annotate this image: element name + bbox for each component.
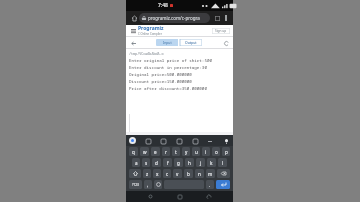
button[interactable]: Voice input [222,137,230,145]
staticText: k [210,160,213,166]
staticText: w [143,149,147,155]
staticText: Programiz [138,25,164,32]
staticText: a [135,160,138,166]
button[interactable]: Clipboard [175,137,183,145]
staticText: e [154,149,157,155]
staticText: . [209,182,211,188]
staticText: g [177,160,180,166]
button[interactable]: Sign up [212,28,230,34]
staticText: o [215,149,218,155]
staticText: Original price=500.000000 [129,72,192,78]
staticText: n [198,171,201,177]
button[interactable]: i [202,147,210,156]
button[interactable]: z [143,169,151,178]
button[interactable]: m [206,169,215,178]
staticText: d [155,160,158,166]
button[interactable]: b [184,169,193,178]
button[interactable]: Backspace [217,169,230,178]
button[interactable]: u [192,147,200,156]
staticText: Sign up [215,29,227,33]
staticText: q [132,149,135,155]
staticText: f [167,160,169,166]
button[interactable]: l [218,158,227,167]
button[interactable]: s [142,158,150,167]
staticText: Output [185,40,197,45]
button[interactable]: GIF [159,137,167,145]
button[interactable]: Stickers [144,137,152,145]
staticText: v [176,171,179,177]
button[interactable]: Input [156,39,178,46]
staticText: x [156,171,159,177]
button[interactable]: Back [129,39,137,47]
staticText: s [145,160,148,166]
button[interactable]: h [185,158,194,167]
button[interactable]: c [163,169,171,178]
staticText: j [200,160,202,166]
staticText: Price after discount=350.000000 [129,86,207,92]
button[interactable]: w [140,147,149,156]
button[interactable]: a [132,158,140,167]
button[interactable]: r [162,147,170,156]
button[interactable]: y [182,147,190,156]
staticText: l [222,160,224,166]
staticText: t [175,149,177,155]
button[interactable]: v [173,169,182,178]
button[interactable]: , [144,180,152,189]
button[interactable]: t [172,147,180,156]
staticText: /tmp/VCcwAbAbdA.o [129,51,164,56]
button[interactable]: Shift [129,169,141,178]
staticText: c [166,171,169,177]
button[interactable]: Enter [216,180,230,189]
button[interactable]: More options [222,14,230,22]
button[interactable]: Emoji [154,180,162,189]
staticText: r [165,149,167,155]
button[interactable]: programiz.com/c-progra [139,13,210,23]
button[interactable]: x [153,169,161,178]
staticText: 7:48 [158,2,168,9]
button[interactable]: g [174,158,183,167]
button[interactable]: Tabs [212,13,222,23]
staticText: Enter original price of shirt:500 [129,58,212,64]
staticText: z [146,171,149,177]
staticText: C Online Compiler [138,32,162,36]
button[interactable]: Google [129,137,136,144]
button[interactable]: d [152,158,161,167]
staticText: y [185,149,188,155]
button[interactable]: n [195,169,204,178]
staticText: ?123 [132,183,139,187]
button[interactable]: More [206,137,214,145]
button[interactable]: Back [144,191,156,202]
staticText: h [188,160,191,166]
button[interactable]: k [207,158,216,167]
staticText: Discount price=150.000000 [129,79,192,85]
staticText: , [147,182,149,188]
button[interactable]: e [151,147,160,156]
staticText: u [195,149,198,155]
button[interactable]: p [222,147,230,156]
button[interactable]: Home [129,13,139,23]
staticText: i [205,149,207,155]
staticText: programiz.com/c-progra [148,15,200,21]
staticText: Input [163,40,172,45]
button[interactable]: f [163,158,172,167]
button[interactable]: Recents [203,191,215,202]
button[interactable]: Menu [129,27,137,35]
button[interactable]: . [206,180,214,189]
staticText: m [208,171,213,177]
button[interactable]: Refresh [222,39,230,47]
button[interactable]: Themes [191,137,199,145]
button[interactable]: o [212,147,220,156]
button[interactable]: j [196,158,205,167]
staticText: b [187,171,190,177]
staticText: p [225,149,228,155]
button[interactable]: Output [180,39,202,46]
button[interactable]: q [129,147,138,156]
staticText: Enter discount in percentage:30 [129,65,207,71]
button[interactable]: Home [174,191,186,202]
button[interactable]: ?123 [129,180,142,189]
